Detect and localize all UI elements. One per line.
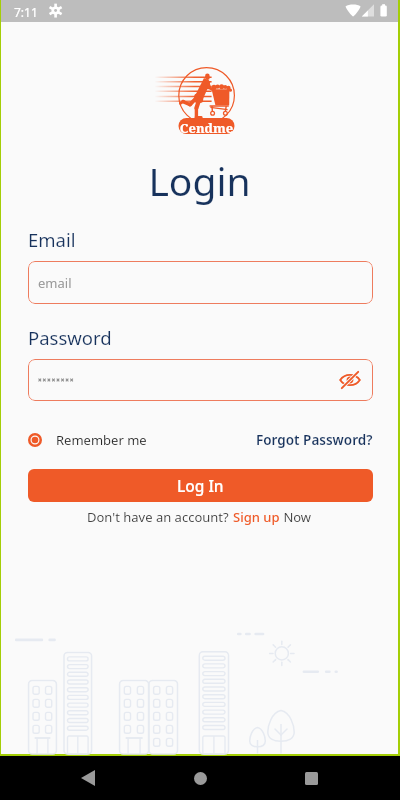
button[interactable]: Forgot Password?: [256, 431, 373, 449]
button[interactable]: Remember me: [28, 431, 147, 449]
button[interactable]: Back: [66, 756, 110, 800]
button[interactable]: Recent apps: [289, 756, 333, 800]
staticText: Remember me: [56, 431, 147, 449]
staticText: Don't have an account?: [87, 508, 233, 526]
staticText: Login: [1, 154, 398, 207]
staticText: Log In: [177, 475, 224, 496]
button[interactable]: email: [28, 261, 373, 304]
button[interactable]: Home: [178, 756, 222, 800]
button[interactable]: Show password: [338, 368, 362, 392]
staticText: Email: [28, 227, 76, 252]
button[interactable]: Show password: [28, 359, 373, 401]
staticText: 7:11: [14, 4, 38, 20]
staticText: Cendme: [177, 119, 236, 137]
staticText: Password: [28, 325, 112, 350]
button[interactable]: Sign up: [233, 508, 280, 526]
staticText: Now: [280, 508, 312, 526]
staticText: email: [38, 274, 72, 292]
button[interactable]: Log In: [28, 469, 373, 502]
